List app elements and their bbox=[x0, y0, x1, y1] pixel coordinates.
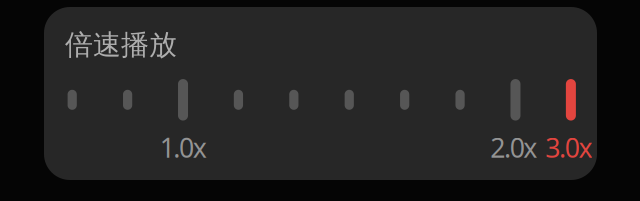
button[interactable]: Speed step 8 bbox=[434, 69, 486, 131]
button[interactable]: Speed step 4 bbox=[212, 69, 264, 131]
button[interactable]: 1.0x bbox=[157, 69, 209, 131]
button[interactable]: Speed step 1 bbox=[46, 69, 98, 131]
button[interactable]: Speed step 6 bbox=[323, 69, 375, 131]
button[interactable]: 3.0x bbox=[545, 69, 597, 131]
staticText: 3.0x bbox=[545, 130, 592, 165]
staticText: 2.0x bbox=[490, 130, 537, 165]
button[interactable]: 2.0x bbox=[489, 69, 541, 131]
staticText: 倍速播放 bbox=[65, 28, 177, 62]
button[interactable]: Speed step 5 bbox=[268, 69, 320, 131]
button[interactable]: Speed step 2 bbox=[102, 69, 154, 131]
button[interactable]: Speed step 7 bbox=[379, 69, 431, 131]
button[interactable]: 3.0x bbox=[545, 130, 592, 165]
staticText: 1.0x bbox=[160, 130, 207, 165]
button[interactable]: 1.0x bbox=[160, 130, 207, 165]
button[interactable]: 2.0x bbox=[490, 130, 537, 165]
